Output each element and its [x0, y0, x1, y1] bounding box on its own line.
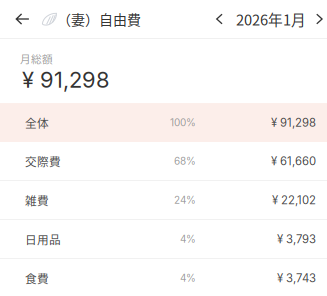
staticText: 食費: [25, 270, 49, 286]
button[interactable]: 日用品: [0, 220, 327, 258]
staticText: 全体: [25, 114, 49, 131]
staticText: ¥ 91,298: [271, 116, 316, 129]
staticText: ¥ 91,298: [22, 66, 110, 93]
staticText: 日用品: [25, 231, 61, 247]
staticText: 4%: [180, 233, 196, 245]
staticText: ¥ 3,793: [277, 232, 316, 246]
staticText: 雑費: [25, 192, 49, 208]
staticText: ¥ 61,660: [271, 154, 316, 168]
staticText: ¥ 22,102: [272, 193, 316, 207]
staticText: 月総額: [20, 51, 53, 66]
staticText: 4%: [180, 272, 196, 284]
button[interactable]: Next month: [306, 0, 327, 38]
staticText: 68%: [174, 155, 196, 167]
staticText: ¥ 3,743: [277, 271, 316, 285]
button[interactable]: 食費: [0, 259, 327, 296]
staticText: 交際費: [25, 153, 61, 169]
button[interactable]: 雑費: [0, 181, 327, 219]
staticText: 100%: [170, 116, 196, 129]
button[interactable]: 全体: [0, 103, 327, 142]
button[interactable]: Back: [0, 0, 41, 38]
button[interactable]: 交際費: [0, 142, 327, 180]
staticText: 2026年1月: [236, 8, 306, 30]
staticText: 24%: [174, 194, 196, 206]
button[interactable]: Previous month: [210, 0, 236, 38]
staticText: （妻）自由費: [57, 9, 141, 29]
